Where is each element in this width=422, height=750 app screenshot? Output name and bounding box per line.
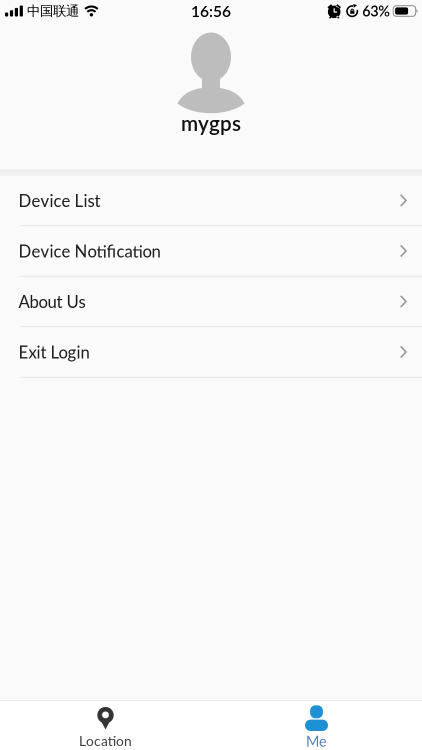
- staticText: Device List: [18, 190, 100, 210]
- staticText: Me: [306, 732, 327, 750]
- staticText: Exit Login: [18, 342, 89, 362]
- button[interactable]: About Us: [0, 277, 422, 327]
- button[interactable]: Me: [211, 701, 422, 750]
- staticText: 16:56: [191, 2, 231, 20]
- button[interactable]: Exit Login: [0, 327, 422, 378]
- staticText: Location: [79, 732, 132, 749]
- staticText: 63%: [362, 2, 390, 20]
- button[interactable]: Location: [0, 701, 211, 750]
- staticText: About Us: [18, 291, 85, 311]
- staticText: mygps: [181, 111, 241, 135]
- staticText: 中国联通: [27, 3, 79, 19]
- staticText: Device Notification: [18, 241, 160, 261]
- button[interactable]: Device Notification: [0, 226, 422, 277]
- button[interactable]: Device List: [0, 176, 422, 226]
